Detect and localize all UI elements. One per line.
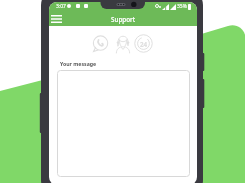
staticText: Your message [60,60,97,67]
button[interactable]: Open navigation menu [49,12,64,25]
button[interactable]: Call support agent [114,35,132,53]
button[interactable]: 24 hour service [134,34,153,53]
staticText: Support [111,15,136,24]
staticText: 35% [177,3,187,10]
button[interactable]: WhatsApp chat [91,35,109,53]
staticText: 24 [140,40,148,48]
staticText: 3:07 [56,3,66,10]
button[interactable] [57,70,190,177]
